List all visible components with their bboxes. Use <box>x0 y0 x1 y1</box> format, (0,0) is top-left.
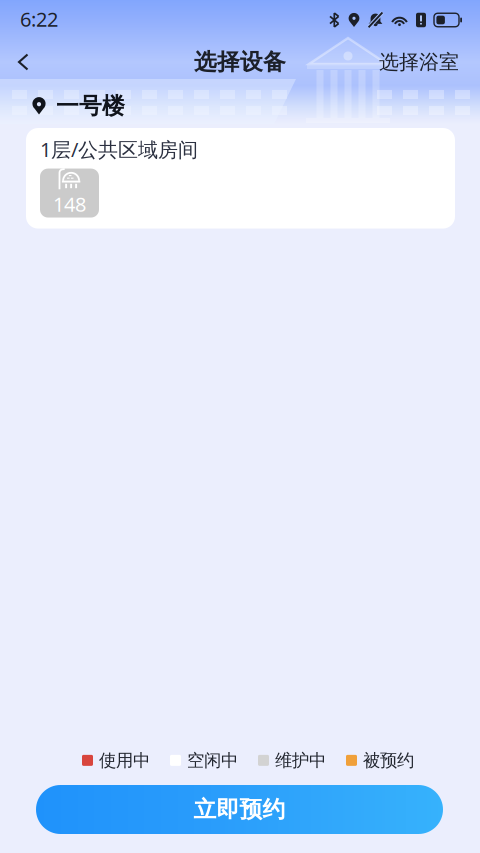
staticText: 立即预约 <box>193 796 285 823</box>
staticText: 维护中 <box>275 750 326 771</box>
staticText: 148 <box>53 191 86 217</box>
staticText: 被预约 <box>363 750 414 771</box>
button[interactable]: 返回 <box>0 40 46 84</box>
button[interactable]: 立即预约 <box>36 785 443 834</box>
staticText: 选择浴室 <box>379 50 459 74</box>
staticText: 6:22 <box>20 6 58 32</box>
staticText: 使用中 <box>99 750 150 771</box>
staticText: 空闲中 <box>187 750 238 771</box>
button[interactable]: 选择浴室 <box>358 40 480 84</box>
staticText: 1层/公共区域房间 <box>40 136 198 163</box>
button[interactable]: 148 <box>40 169 99 218</box>
staticText: 一号楼 <box>56 92 125 120</box>
staticText: 选择设备 <box>194 48 286 76</box>
